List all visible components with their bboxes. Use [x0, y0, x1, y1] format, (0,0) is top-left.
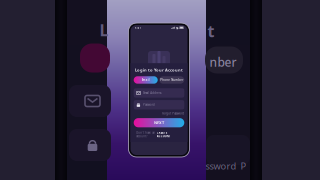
staticText: CREATE ACCOUNT: [157, 131, 171, 138]
staticText: t: [207, 20, 214, 42]
staticText: Login to Your Account: [135, 67, 183, 73]
staticText: Don't have an account?: [136, 131, 155, 138]
button[interactable]: NEXT: [134, 118, 184, 127]
button[interactable]: Forgot Password: [162, 112, 184, 115]
staticText: Email: [142, 78, 150, 82]
staticText: 9:41: [134, 26, 141, 29]
staticText: Forgot Password: [162, 112, 184, 115]
staticText: nber: [209, 54, 236, 70]
staticText: Phone Number: [160, 78, 183, 82]
button[interactable]: Phone Number: [159, 76, 184, 84]
staticText: L: [99, 19, 108, 41]
button[interactable]: CREATE ACCOUNT: [157, 131, 171, 138]
button[interactable]: Email: [134, 76, 158, 84]
staticText: ssword P: [205, 160, 246, 172]
staticText: NEXT: [154, 120, 164, 125]
staticText: Password: [143, 103, 155, 106]
staticText: Email Address: [143, 91, 161, 95]
